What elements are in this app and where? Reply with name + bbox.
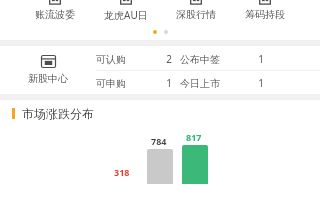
staticText: 1	[158, 76, 180, 90]
staticText: 可申购	[96, 77, 158, 90]
staticText: 318	[114, 166, 130, 178]
button[interactable]: 今日上市	[180, 76, 272, 90]
staticText: 深股行情	[176, 8, 216, 20]
staticText: 784	[151, 135, 167, 147]
button[interactable]: 龙虎AU日	[104, 0, 148, 20]
staticText: 今日上市	[180, 77, 250, 90]
staticText: 817	[186, 131, 202, 143]
staticText: 账流波委	[35, 8, 75, 20]
button[interactable]: 账流波委	[35, 0, 75, 20]
button[interactable]: 可认购	[96, 52, 180, 66]
staticText: 筹码持段	[245, 8, 285, 20]
staticText: 新股中心	[28, 72, 68, 85]
button[interactable]: 可申购	[96, 76, 180, 90]
staticText: 市场涨跌分布	[22, 106, 94, 121]
staticText: 2	[158, 52, 180, 66]
staticText: 1	[250, 76, 272, 90]
staticText: 可认购	[96, 53, 158, 66]
staticText: 公布中签	[180, 53, 250, 66]
button[interactable]: 公布中签	[180, 52, 272, 66]
staticText: 龙虎AU日	[104, 8, 148, 20]
button[interactable]: 筹码持段	[245, 0, 285, 20]
button[interactable]: 深股行情	[176, 0, 216, 20]
button[interactable]: 新股中心	[0, 46, 320, 94]
staticText: 1	[250, 52, 272, 66]
